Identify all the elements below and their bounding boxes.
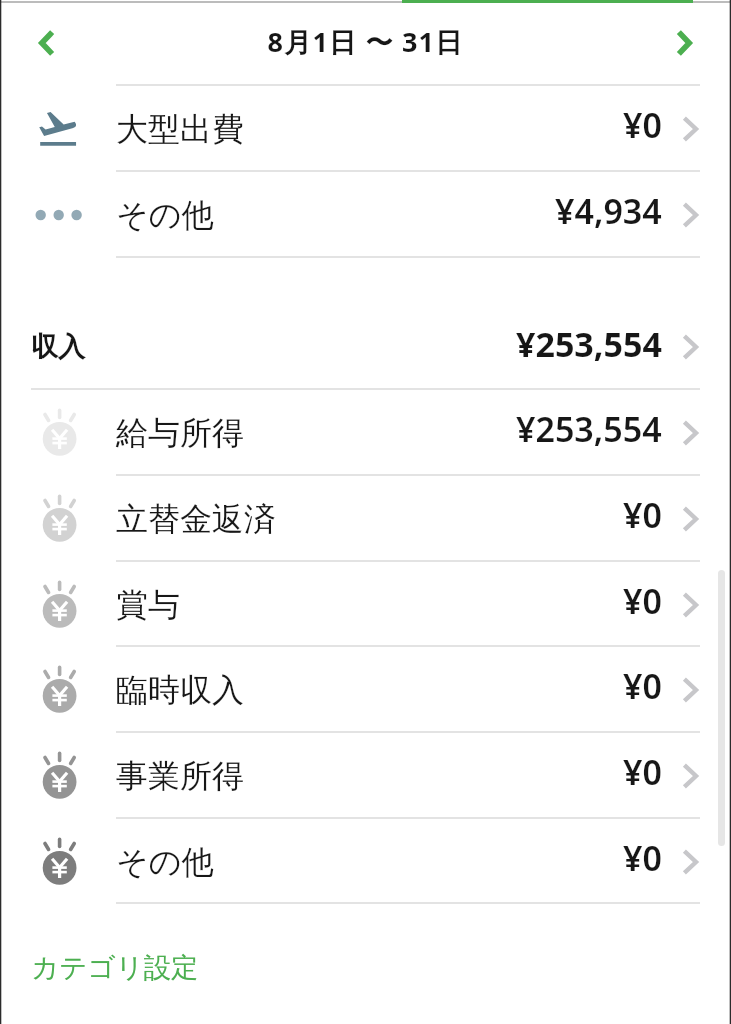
button[interactable]: 収入 <box>0 304 731 390</box>
staticText: ¥0 <box>623 578 662 624</box>
staticText: ¥0 <box>623 102 662 148</box>
button[interactable]: Previous period <box>0 3 92 86</box>
staticText: ¥0 <box>623 749 662 795</box>
button[interactable]: 給与所得 <box>0 390 731 476</box>
staticText: ¥0 <box>623 492 662 538</box>
staticText: 8月1日 〜 31日 <box>92 23 639 60</box>
staticText: 立替金返済 <box>116 499 276 539</box>
staticText: その他 <box>116 195 214 235</box>
staticText: カテゴリ設定 <box>31 951 199 986</box>
button[interactable]: 大型出費 <box>0 86 731 172</box>
staticText: ¥0 <box>623 663 662 709</box>
button[interactable]: 事業所得 <box>0 733 731 819</box>
staticText: ¥253,554 <box>516 406 662 452</box>
button[interactable]: Next period <box>639 3 731 86</box>
staticText: 給与所得 <box>116 413 244 453</box>
staticText: ¥4,934 <box>555 188 662 234</box>
staticText: 収入 <box>31 330 85 364</box>
button[interactable]: カテゴリ設定 <box>31 951 199 986</box>
staticText: ¥253,554 <box>516 321 662 367</box>
staticText: 大型出費 <box>116 109 244 149</box>
button[interactable]: 臨時収入 <box>0 647 731 733</box>
button[interactable]: 立替金返済 <box>0 476 731 562</box>
button[interactable]: その他 <box>0 172 731 258</box>
button[interactable]: 賞与 <box>0 562 731 647</box>
staticText: ¥0 <box>623 835 662 881</box>
button[interactable]: その他 <box>0 819 731 904</box>
staticText: 臨時収入 <box>116 670 244 710</box>
staticText: 賞与 <box>116 585 180 625</box>
staticText: その他 <box>116 842 214 882</box>
staticText: 事業所得 <box>116 756 244 796</box>
